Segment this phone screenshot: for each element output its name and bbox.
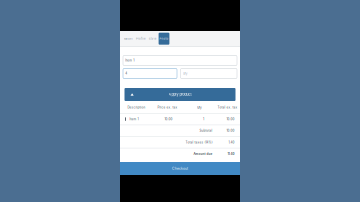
staticText: 10.00 xyxy=(226,117,234,121)
staticText: Qty xyxy=(183,72,188,75)
staticText: Description xyxy=(127,106,145,109)
staticText: 4 xyxy=(125,72,127,75)
staticText: Amount due xyxy=(193,152,212,156)
button[interactable]: Photo xyxy=(159,33,169,45)
staticText: 10.00 xyxy=(164,117,172,121)
button[interactable]: Checkout xyxy=(120,162,240,175)
button[interactable]: Apply product xyxy=(124,88,235,101)
staticText: Total ex. tax xyxy=(217,106,237,109)
staticText: Subtotal xyxy=(199,129,212,132)
button[interactable]: Style xyxy=(148,33,158,45)
button[interactable]: Profile xyxy=(135,33,147,45)
staticText: Model xyxy=(124,37,133,40)
staticText: Checkout xyxy=(172,166,188,171)
staticText: Item 1 xyxy=(125,59,134,62)
button[interactable]: Qty xyxy=(180,68,237,78)
staticText: Profile xyxy=(136,37,146,40)
staticText: Apply product xyxy=(168,92,191,97)
staticText: Photo xyxy=(159,37,168,40)
staticText: Total taxes (14%) xyxy=(185,140,212,144)
staticText: 1.40 xyxy=(228,140,234,144)
staticText: 10.00 xyxy=(226,129,234,132)
staticText: Style xyxy=(149,37,157,40)
button[interactable]: Item 1 xyxy=(123,55,237,65)
button[interactable]: 4 xyxy=(123,68,177,78)
staticText: Qty xyxy=(197,106,202,109)
staticText: Price ex. tax xyxy=(157,106,177,109)
button[interactable]: Model xyxy=(123,33,134,45)
staticText: 11.40 xyxy=(227,152,234,156)
staticText: 1 xyxy=(203,117,204,121)
staticText: Item 1 xyxy=(129,117,138,121)
